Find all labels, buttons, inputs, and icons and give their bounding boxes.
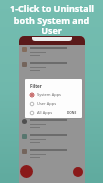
staticText: Filter bbox=[30, 83, 42, 89]
button[interactable]: DONE bbox=[65, 110, 79, 116]
button[interactable]: User Apps bbox=[30, 101, 79, 106]
staticText: Apps bbox=[40, 37, 63, 49]
staticText: DONE bbox=[67, 111, 77, 115]
button[interactable] bbox=[19, 45, 85, 60]
staticText: System Apps bbox=[37, 92, 62, 97]
button[interactable] bbox=[19, 147, 85, 162]
staticText: 1-Click to Uninstall bbox=[10, 2, 94, 14]
button[interactable]: All Apps bbox=[30, 110, 79, 115]
staticText: All Apps bbox=[37, 110, 53, 115]
staticText: both System and User bbox=[3, 14, 100, 37]
button[interactable] bbox=[19, 132, 85, 147]
button[interactable]: Filter apps bbox=[73, 167, 83, 177]
button[interactable] bbox=[19, 60, 85, 75]
staticText: User Apps bbox=[37, 101, 57, 106]
button[interactable]: Uninstall selected apps bbox=[20, 165, 33, 178]
button[interactable] bbox=[19, 117, 85, 132]
button[interactable]: System Apps bbox=[30, 92, 79, 97]
